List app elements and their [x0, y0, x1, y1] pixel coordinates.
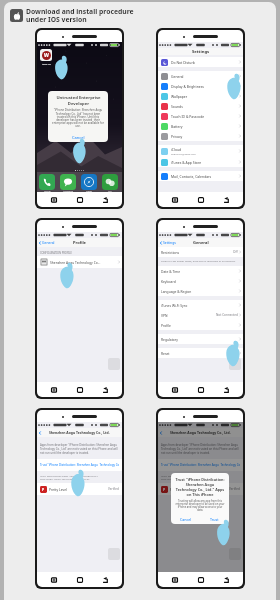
button[interactable]: W: [40, 49, 52, 61]
button[interactable]: Recents: [170, 195, 180, 205]
staticText: Pretty Level: [49, 487, 67, 491]
staticText: CONFIGURATION PROFILE: [40, 251, 72, 255]
button[interactable]: Trust: [200, 515, 229, 524]
button[interactable]: Recents: [49, 575, 59, 585]
button[interactable]: [102, 174, 118, 190]
button[interactable]: Profile: [158, 320, 243, 330]
button[interactable]: Regulatory: [158, 334, 243, 344]
staticText: Download and install procedure under IOS…: [26, 7, 134, 24]
button[interactable]: Date & Time: [158, 266, 243, 276]
button[interactable]: General: [158, 71, 243, 81]
staticText: Off: [233, 250, 238, 254]
button[interactable]: Back: [100, 195, 110, 205]
button[interactable]: Back: [221, 195, 231, 205]
button[interactable]: Recents: [170, 385, 180, 395]
button[interactable]: Mail, Contacts, Calendars: [158, 171, 243, 181]
staticText: Language & Region: [161, 289, 192, 293]
staticText: Mou La: [42, 62, 51, 65]
button[interactable]: [60, 174, 76, 190]
button[interactable]: Back: [37, 220, 122, 397]
button[interactable]: Back: [221, 385, 231, 395]
staticText: Battery: [171, 124, 183, 129]
staticText: Shenzhen Aogu Technology Co...: [50, 260, 101, 264]
button[interactable]: Reset: [158, 348, 243, 358]
button[interactable]: Settings: [158, 30, 243, 207]
staticText: Privacy: [171, 134, 183, 139]
staticText: Verified: [229, 487, 240, 491]
button[interactable]: Trust "iPhone Distribution: Shenzhen Aog…: [40, 459, 119, 471]
button[interactable]: Home: [75, 195, 85, 205]
button[interactable]: Back: [221, 575, 231, 585]
staticText: iTunes Wi-Fi Sync: [161, 303, 188, 307]
staticText: Profile: [73, 240, 87, 245]
button[interactable]: Back: [160, 238, 243, 247]
button[interactable]: Back: [39, 428, 122, 437]
button[interactable]: Restrictions: [158, 247, 243, 257]
button[interactable]: Cancel: [48, 133, 108, 142]
button[interactable]: iCloud: [158, 145, 243, 157]
button[interactable]: Keyboard: [158, 276, 243, 286]
staticText: Settings: [192, 49, 210, 55]
button[interactable]: iTunes Wi-Fi Sync: [158, 300, 243, 310]
staticText: Date & Time: [161, 269, 181, 273]
button[interactable]: P: [40, 483, 119, 495]
button[interactable]: [81, 174, 97, 190]
button[interactable]: Back: [39, 238, 122, 247]
button[interactable]: Home: [75, 575, 85, 585]
staticText: Mail, Contacts, Calendars: [171, 174, 212, 179]
button[interactable]: Sounds: [158, 101, 243, 111]
button[interactable]: Recents: [49, 385, 59, 395]
staticText: aoguXXXX@aogu.com: [171, 152, 196, 155]
staticText: Phone: [44, 190, 51, 192]
button[interactable]: Shenzhen Aogu Technology Co...: [40, 256, 120, 268]
button[interactable]: Privacy: [158, 131, 243, 141]
staticText: Sounds: [171, 104, 183, 109]
staticText: General: [42, 240, 55, 245]
button[interactable]: Do Not Disturb: [158, 57, 243, 67]
button[interactable]: Battery: [158, 121, 243, 131]
button[interactable]: Touch ID & Passcode: [158, 111, 243, 121]
button[interactable]: Recents: [170, 575, 180, 585]
button[interactable]: Home: [75, 385, 85, 395]
button[interactable]: Wallpaper: [158, 91, 243, 101]
button[interactable]: Scroll: [229, 358, 241, 370]
staticText: APPS FROM DEVELOPER "IPHONE DISTRIBUTION…: [161, 474, 219, 481]
staticText: Keyboard: [161, 279, 176, 283]
button[interactable]: VPN: [158, 310, 243, 320]
staticText: iCloud: [171, 147, 182, 152]
button[interactable]: Recents: [49, 195, 59, 205]
staticText: Trusting will allow any app from this en…: [175, 499, 225, 511]
button[interactable]: Home: [196, 195, 206, 205]
button[interactable]: Cancel: [171, 515, 200, 524]
button[interactable]: P: [161, 483, 240, 495]
staticText: Shenzhen Aogu Technology Co., Ltd.: [49, 430, 110, 435]
button[interactable]: Display & Brightness: [158, 81, 243, 91]
button[interactable]: Back: [100, 385, 110, 395]
button[interactable]: Trust "iPhone Distribution: Shenzhen Aog…: [161, 459, 240, 471]
staticText: Restrictions: [161, 250, 180, 254]
button[interactable]: Home: [196, 575, 206, 585]
staticText: Wallpaper: [171, 94, 188, 99]
staticText: Apps from developer "iPhone Distribution…: [161, 443, 240, 455]
button[interactable]: Language & Region: [158, 286, 243, 296]
staticText: When in Low Power Mode, auto-lock is res…: [161, 259, 236, 262]
button[interactable]: Back: [37, 410, 122, 587]
staticText: Settings: [163, 240, 176, 245]
button[interactable]: Back: [100, 575, 110, 585]
button[interactable]: Back: [158, 220, 243, 397]
staticText: Trust "iPhone Distribution: Shenzhen Aog…: [161, 463, 240, 467]
staticText: P: [42, 487, 45, 492]
button[interactable]: Back: [160, 428, 243, 437]
button[interactable]: Back: [158, 410, 243, 587]
button[interactable]: W: [37, 30, 122, 207]
staticText: W: [44, 52, 49, 59]
staticText: iTunes & App Store: [171, 160, 202, 165]
button[interactable]: Home: [196, 385, 206, 395]
button[interactable]: [39, 174, 55, 190]
staticText: Untrusted Enterprise Developer: [56, 95, 101, 106]
staticText: APPS FROM DEVELOPER "IPHONE DISTRIBUTION…: [40, 474, 98, 481]
button[interactable]: iTunes & App Store: [158, 157, 243, 167]
